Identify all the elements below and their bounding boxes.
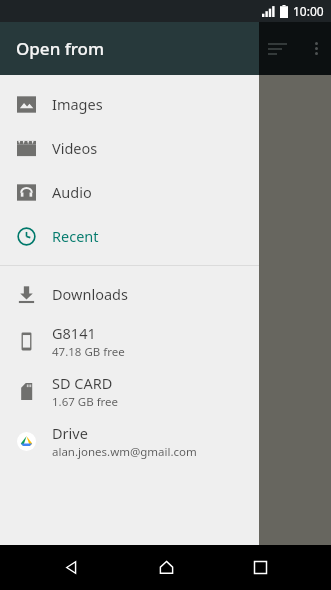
button[interactable]: Drive [0, 416, 259, 466]
button[interactable]: Images [0, 82, 259, 126]
staticText: 1.67 GB free [52, 394, 119, 410]
button[interactable]: Audio [0, 170, 259, 214]
button[interactable]: Recent [0, 214, 259, 258]
staticText: Downloads [52, 284, 128, 304]
staticText: Drive [52, 423, 88, 443]
staticText: Images [52, 94, 103, 114]
button[interactable]: SD CARD [0, 366, 259, 416]
staticText: alan.jones.wm@gmail.com [52, 444, 197, 460]
button[interactable]: G8141 [0, 316, 259, 366]
button[interactable]: Home [143, 545, 189, 590]
staticText: Videos [52, 138, 98, 158]
staticText: Audio [52, 182, 92, 202]
staticText: 47.18 GB free [52, 344, 125, 360]
staticText: G8141 [52, 323, 96, 343]
button[interactable]: Recents [237, 545, 283, 590]
staticText: SD CARD [52, 373, 113, 393]
staticText: Open from [16, 37, 105, 60]
button[interactable]: Videos [0, 126, 259, 170]
staticText: Recent [52, 226, 99, 246]
button[interactable]: Downloads [0, 272, 259, 316]
staticText: 10:00 [293, 3, 324, 19]
button[interactable]: Back [48, 545, 94, 590]
